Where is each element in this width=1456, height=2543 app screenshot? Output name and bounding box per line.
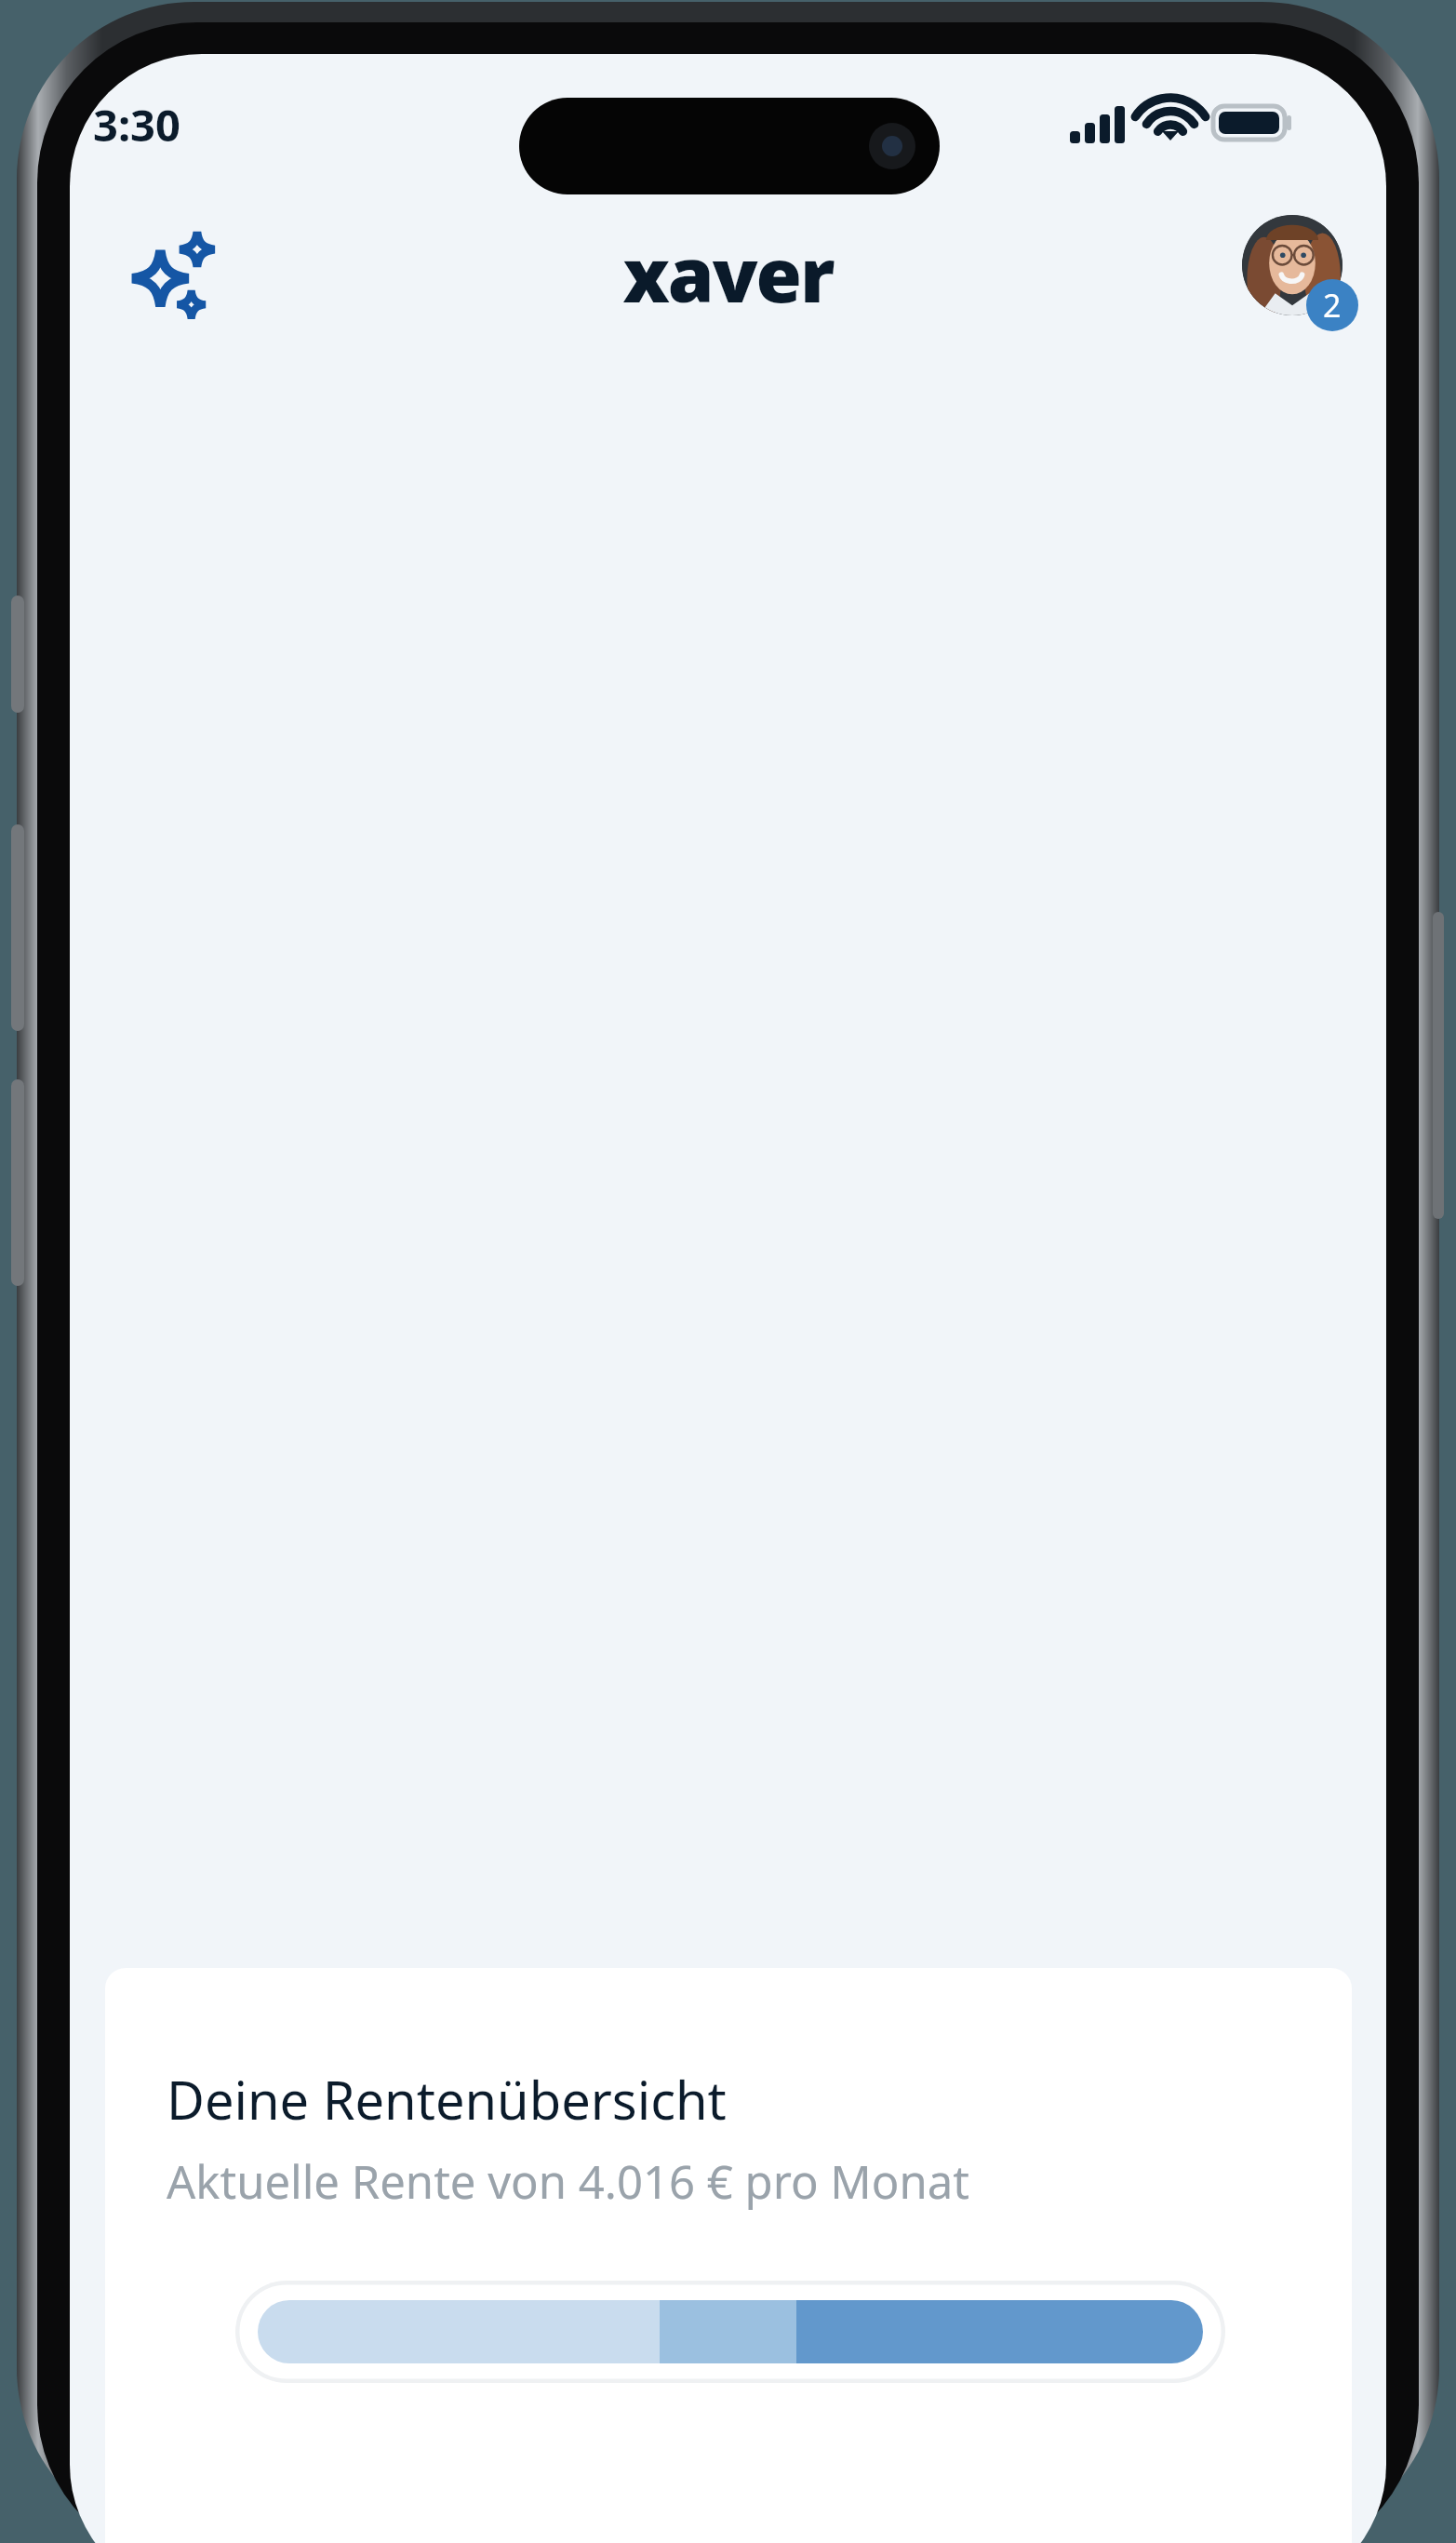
button[interactable]: xaver	[622, 222, 834, 324]
button[interactable]: Profile, 2 notifications	[1242, 215, 1358, 331]
staticText: xaver	[622, 222, 834, 324]
staticText: Deine Rentenübersicht	[167, 2064, 727, 2135]
staticText: 3:30	[93, 95, 180, 154]
staticText: 2	[1323, 284, 1342, 327]
button[interactable]: AI Assistant	[120, 217, 232, 328]
button[interactable]: Deine Rentenübersicht	[105, 1968, 1352, 2543]
staticText: Aktuelle Rente von 4.016 € pro Monat	[167, 2150, 969, 2213]
